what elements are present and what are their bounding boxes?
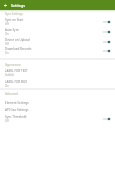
- staticText: Device on Upload: [5, 38, 30, 42]
- button[interactable]: Toggle setting: [100, 38, 112, 46]
- staticText: Sync Settings: [5, 12, 23, 16]
- staticText: Off: [5, 42, 9, 46]
- staticText: Sync Threshold: [5, 115, 27, 119]
- staticText: Appearance: [5, 63, 21, 67]
- button[interactable]: [0, 27, 115, 37]
- staticText: On: [5, 84, 9, 88]
- button[interactable]: [0, 106, 115, 113]
- staticText: Download Records: [5, 47, 32, 51]
- staticText: LABEL FOR TEXT: [5, 69, 28, 73]
- button[interactable]: Back: [0, 0, 10, 10]
- staticText: Settings: [11, 3, 25, 8]
- button[interactable]: [0, 79, 115, 89]
- button[interactable]: [0, 99, 115, 106]
- staticText: Off: [5, 119, 9, 123]
- staticText: Off: [5, 22, 9, 26]
- staticText: Element Settings: [5, 101, 29, 105]
- staticText: On: [5, 51, 9, 55]
- button[interactable]: [0, 46, 115, 56]
- staticText: API Geo Settings: [5, 108, 29, 112]
- staticText: Advanced: [5, 92, 19, 96]
- button[interactable]: [0, 113, 115, 123]
- button[interactable]: Toggle setting: [100, 115, 112, 123]
- button[interactable]: [0, 17, 115, 27]
- staticText: Subtitle: [5, 73, 15, 77]
- button[interactable]: [0, 68, 115, 78]
- button[interactable]: Toggle setting: [100, 18, 112, 26]
- staticText: LABEL FOR BOX: [5, 80, 27, 84]
- staticText: Sync on Start: [5, 18, 24, 22]
- staticText: Auto Sync: [5, 28, 19, 32]
- button[interactable]: [0, 36, 115, 46]
- staticText: On: [5, 32, 9, 36]
- button[interactable]: Toggle setting: [100, 47, 112, 55]
- button[interactable]: Toggle setting: [100, 28, 112, 36]
